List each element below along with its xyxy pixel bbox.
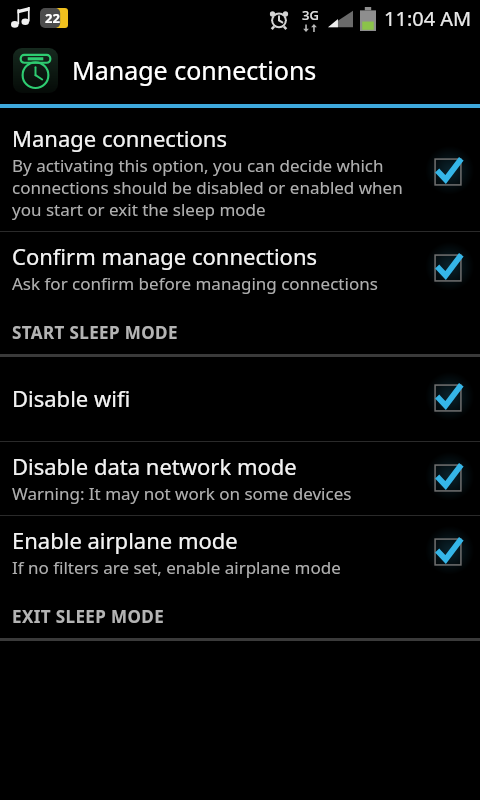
button[interactable]: Confirm manage connections [0, 232, 480, 305]
staticText: If no filters are set, enable airplane m… [12, 556, 341, 579]
staticText: Disable wifi [12, 383, 131, 413]
button[interactable]: Manage connections [0, 36, 480, 104]
button[interactable]: Enable airplane mode [0, 516, 480, 589]
staticText: EXIT SLEEP MODE [12, 605, 165, 628]
button[interactable]: Manage connections [0, 116, 480, 231]
staticText: 3G [302, 6, 319, 24]
button[interactable]: Toggle setting [426, 150, 470, 194]
staticText: By activating this option, you can decid… [12, 154, 414, 221]
staticText: Manage connections [12, 123, 227, 153]
button[interactable]: Toggle setting [426, 376, 470, 420]
staticText: 11:04 AM [384, 5, 472, 32]
button[interactable]: Disable data network mode [0, 442, 480, 515]
staticText: START SLEEP MODE [12, 321, 178, 344]
staticText: Warning: It may not work on some devices [12, 482, 352, 505]
staticText: Disable data network mode [12, 451, 297, 481]
staticText: Confirm manage connections [12, 241, 318, 271]
staticText: Ask for confirm before managing connecti… [12, 272, 378, 295]
button[interactable]: Toggle setting [426, 530, 470, 574]
button[interactable]: Toggle setting [426, 456, 470, 500]
staticText: 22 [45, 9, 60, 27]
staticText: Enable airplane mode [12, 525, 238, 555]
button[interactable]: Toggle setting [426, 246, 470, 290]
staticText: Manage connections [72, 53, 317, 87]
button[interactable]: Disable wifi [0, 357, 480, 441]
